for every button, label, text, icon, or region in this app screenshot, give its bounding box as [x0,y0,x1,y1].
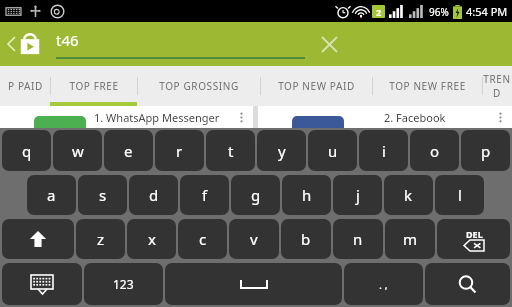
button[interactable]: TOP NEW FREE [372,66,482,106]
staticText: q [22,141,32,161]
staticText: a [47,185,56,205]
staticText: w [72,141,84,161]
button[interactable]: Space [165,263,342,305]
staticText: h [302,185,312,205]
staticText: t46 [56,30,79,50]
button[interactable]: TOP GROSSING [137,66,260,106]
button[interactable]: Shift [2,219,74,259]
button[interactable]: t [206,130,255,171]
staticText: v [250,229,258,249]
button[interactable]: r [155,130,204,171]
staticText: f [202,185,208,205]
staticText: n [353,229,363,249]
staticText: 123 [113,276,134,292]
staticText: p [481,141,491,161]
staticText: TOP FREE [69,79,119,93]
button[interactable]: P PAID [0,66,50,106]
button[interactable]: z [76,219,125,259]
button[interactable]: TOP NEW PAID [260,66,372,106]
button[interactable]: TREND [482,66,512,106]
staticText: TOP NEW PAID [278,79,355,93]
button[interactable]: t46 [56,30,452,59]
staticText: l [458,185,462,205]
staticText: 4:54 PM [466,4,508,19]
button[interactable]: v [229,219,279,259]
staticText: TREND [482,72,512,100]
button[interactable]: o [410,130,459,171]
button[interactable]: 1. WhatsApp Messenger [0,106,253,128]
staticText: y [278,141,286,161]
staticText: TOP NEW FREE [389,79,466,93]
button[interactable]: More options [235,111,247,123]
staticText: m [403,229,418,249]
button[interactable]: y [257,130,306,171]
staticText: o [430,141,440,161]
button[interactable]: p [461,130,510,171]
staticText: d [149,185,159,205]
button[interactable]: 123 [84,263,163,305]
button[interactable]: n [333,219,383,259]
staticText: r [176,141,183,161]
button[interactable]: i [359,130,408,171]
button[interactable]: d [129,175,178,215]
staticText: k [404,185,413,205]
button[interactable]: f [180,175,229,215]
button[interactable]: b [281,219,331,259]
staticText: e [124,141,133,161]
button[interactable]: 2. Facebook [258,106,512,128]
staticText: b [301,229,311,249]
button[interactable]: x [127,219,176,259]
staticText: P PAID [8,79,43,93]
button[interactable]: Hide keyboard [2,263,82,305]
staticText: 96% [429,5,449,19]
staticText: i [382,141,386,161]
button[interactable]: l [435,175,484,215]
button[interactable]: a [27,175,76,215]
staticText: . , [379,277,388,292]
button[interactable]: k [384,175,433,215]
staticText: 1. WhatsApp Messenger [94,110,220,125]
button[interactable]: Clear search [312,27,346,61]
button[interactable]: q [2,130,51,171]
button[interactable]: Delete [437,219,510,259]
staticText: z [97,229,105,249]
staticText: s [99,185,107,205]
button[interactable]: e [104,130,153,171]
button[interactable]: m [385,219,435,259]
button[interactable]: u [308,130,357,171]
button[interactable]: h [282,175,331,215]
button[interactable]: . , [344,263,423,305]
staticText: TOP GROSSING [159,79,239,93]
staticText: x [148,229,156,249]
button[interactable]: c [178,219,227,259]
staticText: 2. Facebook [384,110,446,125]
staticText: g [251,185,261,205]
staticText: t [228,141,234,161]
button[interactable]: w [53,130,102,171]
button[interactable]: Back to Play Store [0,22,48,66]
staticText: c [199,229,207,249]
staticText: u [328,141,338,161]
button[interactable]: Search [425,263,510,305]
button[interactable]: More options [494,111,506,123]
button[interactable]: TOP FREE [50,66,137,106]
button[interactable]: j [333,175,382,215]
button[interactable]: g [231,175,280,215]
staticText: DEL [466,228,483,240]
button[interactable]: s [78,175,127,215]
staticText: 2 [376,6,382,18]
staticText: j [356,185,360,205]
